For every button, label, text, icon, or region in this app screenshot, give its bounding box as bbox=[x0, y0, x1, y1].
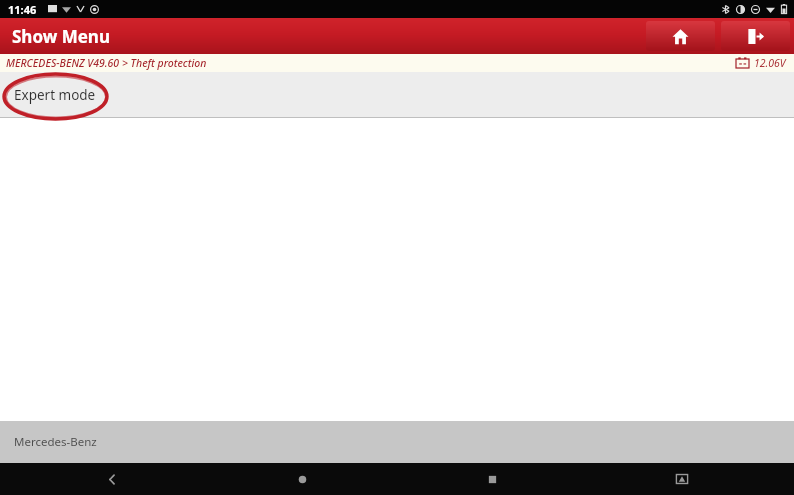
staticText: Mercedes-Benz bbox=[14, 434, 97, 450]
staticText: Expert mode bbox=[14, 86, 96, 104]
button[interactable]: Back bbox=[88, 463, 136, 495]
staticText: Show Menu bbox=[12, 25, 110, 48]
button[interactable]: Screenshot bbox=[658, 463, 706, 495]
staticText: 11:46 bbox=[8, 2, 37, 17]
button[interactable]: Home bbox=[646, 21, 715, 51]
button[interactable]: Recents bbox=[468, 463, 516, 495]
button[interactable]: Exit bbox=[721, 21, 790, 51]
button[interactable]: Home bbox=[278, 463, 326, 495]
staticText: 12.06V bbox=[754, 56, 786, 70]
staticText: MERCEDES-BENZ V49.60 > Theft protection bbox=[6, 56, 207, 70]
button[interactable]: Expert mode bbox=[0, 72, 794, 117]
